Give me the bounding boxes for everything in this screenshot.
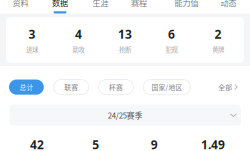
staticText: 42 <box>30 137 44 151</box>
button[interactable]: 总计 <box>9 79 44 95</box>
staticText: 助攻 <box>72 45 84 54</box>
staticText: 3 <box>28 26 35 42</box>
staticText: 杯赛 <box>109 82 123 92</box>
staticText: 13 <box>118 26 132 42</box>
staticText: 24/25赛季 <box>108 110 143 121</box>
staticText: 抢断 <box>119 45 131 54</box>
button[interactable]: 生涯 <box>83 0 117 13</box>
staticText: 能力值 <box>174 0 198 8</box>
staticText: 生涯 <box>92 0 108 8</box>
staticText: 9 <box>151 137 158 151</box>
staticText: 进球 <box>26 45 38 54</box>
button[interactable]: 全部 <box>218 82 238 92</box>
staticText: 资料 <box>12 0 28 8</box>
staticText: 5 <box>92 137 99 151</box>
button[interactable]: 能力值 <box>169 0 203 13</box>
button[interactable]: 数据 <box>43 0 77 13</box>
button[interactable]: 联赛 <box>54 79 89 95</box>
staticText: 4 <box>75 26 82 42</box>
button[interactable]: 动态 <box>211 0 245 13</box>
staticText: 犯规 <box>165 45 177 54</box>
staticText: 全部 <box>218 82 232 92</box>
staticText: 数据 <box>52 0 68 8</box>
button[interactable]: 赛程 <box>122 0 156 13</box>
staticText: 6 <box>168 26 175 42</box>
staticText: 2 <box>214 26 221 42</box>
staticText: 1.49 <box>201 137 225 151</box>
staticText: 国家/地区 <box>151 82 182 92</box>
staticText: 总计 <box>19 82 33 92</box>
staticText: 赛程 <box>131 0 147 8</box>
staticText: 联赛 <box>64 82 78 92</box>
button[interactable]: 国家/地区 <box>143 79 190 95</box>
staticText: 动态 <box>220 0 236 8</box>
button[interactable]: 资料 <box>3 0 37 13</box>
button[interactable]: 杯赛 <box>99 79 133 95</box>
staticText: 黄牌 <box>212 45 224 54</box>
